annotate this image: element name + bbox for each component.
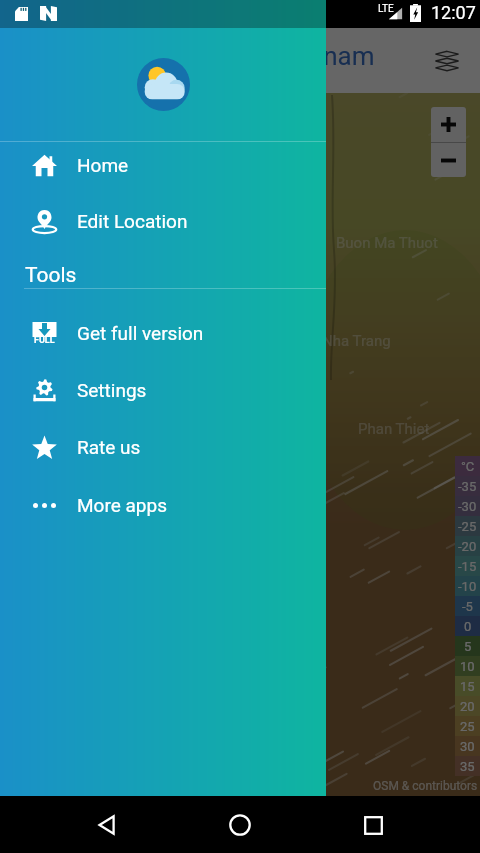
button[interactable]: Home: [0, 137, 326, 193]
button[interactable]: Recent apps: [347, 799, 399, 851]
button[interactable]: FULL: [0, 305, 326, 361]
staticText: 10: [460, 659, 475, 674]
staticText: -30: [458, 499, 477, 514]
button[interactable]: Zoom out: [431, 143, 466, 177]
button[interactable]: Rate us: [0, 419, 326, 475]
staticText: Edit Location: [77, 210, 188, 232]
staticText: OSM & contributors: [373, 779, 480, 793]
staticText: Home: [77, 154, 129, 176]
button[interactable]: Edit Location: [0, 193, 326, 249]
staticText: LTE: [378, 3, 394, 15]
staticText: -35: [458, 479, 477, 494]
staticText: Buon Ma Thuot: [336, 234, 438, 252]
staticText: 12:07: [431, 2, 476, 23]
staticText: 25: [460, 719, 475, 734]
staticText: -10: [458, 579, 477, 594]
staticText: Phan Thiet: [358, 420, 430, 438]
staticText: Tools: [25, 263, 77, 288]
button[interactable]: More apps: [0, 477, 326, 533]
staticText: Nha Trang: [322, 332, 391, 350]
staticText: °C: [461, 459, 475, 474]
staticText: Get full version: [77, 322, 204, 344]
staticText: More apps: [77, 494, 167, 516]
staticText: FULL: [34, 335, 55, 346]
button[interactable]: Zoom in: [431, 107, 466, 142]
staticText: -25: [458, 519, 477, 534]
staticText: 15: [460, 679, 475, 694]
button[interactable]: Settings: [0, 362, 326, 418]
staticText: 5: [464, 639, 472, 654]
staticText: Settings: [77, 379, 147, 401]
staticText: -5: [462, 599, 473, 614]
button[interactable]: Map layers: [426, 40, 468, 82]
staticText: Vietnam: [278, 41, 375, 71]
staticText: 30: [460, 739, 475, 754]
staticText: 20: [460, 699, 475, 714]
staticText: Rate us: [77, 436, 141, 458]
staticText: 0: [464, 619, 472, 634]
staticText: 35: [460, 759, 475, 774]
staticText: -15: [458, 559, 477, 574]
staticText: -20: [458, 539, 477, 554]
button[interactable]: Back: [81, 799, 133, 851]
button[interactable]: Home: [214, 799, 266, 851]
